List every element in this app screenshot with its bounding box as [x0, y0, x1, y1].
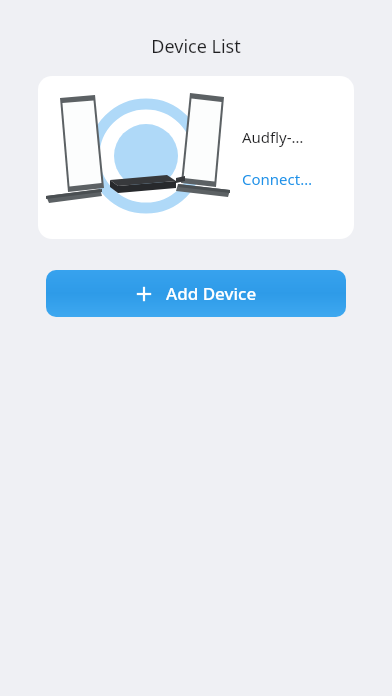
staticText: Add Device	[166, 282, 257, 305]
staticText: Audfly-…	[242, 127, 304, 147]
button[interactable]: Connect…	[242, 169, 313, 189]
button[interactable]: Audfly-…	[38, 76, 354, 239]
staticText: Device List	[151, 34, 241, 59]
staticText: Connect…	[242, 169, 313, 189]
button[interactable]: Add Device	[46, 270, 346, 317]
